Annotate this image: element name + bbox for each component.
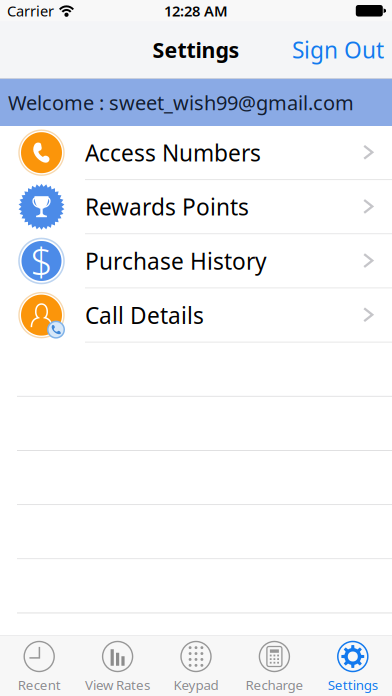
staticText: Welcome : sweet_wish99@gmail.com bbox=[8, 89, 354, 116]
button[interactable]: Recharge bbox=[235, 635, 314, 696]
button[interactable]: Access Numbers bbox=[0, 126, 392, 180]
button[interactable]: Rewards Points bbox=[0, 180, 392, 234]
button[interactable]: $ bbox=[0, 234, 392, 288]
staticText: Recharge bbox=[245, 676, 303, 694]
staticText: View Rates bbox=[85, 676, 150, 694]
staticText: $ bbox=[30, 235, 52, 287]
button[interactable]: View Rates bbox=[78, 635, 157, 696]
staticText: Call Details bbox=[85, 300, 204, 330]
staticText: 12:28 AM bbox=[164, 1, 228, 20]
button[interactable]: Sign Out bbox=[284, 21, 392, 78]
staticText: Recent bbox=[18, 676, 61, 694]
staticText: Sign Out bbox=[292, 35, 384, 65]
staticText: Carrier bbox=[7, 1, 54, 20]
staticText: Rewards Points bbox=[85, 192, 249, 222]
button[interactable]: Call Details bbox=[0, 288, 392, 343]
staticText: Purchase History bbox=[85, 246, 267, 276]
staticText: Keypad bbox=[173, 676, 218, 694]
button[interactable]: Recent bbox=[0, 635, 78, 696]
button[interactable]: Settings bbox=[314, 635, 392, 696]
staticText: Settings bbox=[328, 676, 378, 694]
staticText: Settings bbox=[152, 36, 239, 64]
button[interactable]: Keypad bbox=[157, 635, 235, 696]
staticText: Access Numbers bbox=[85, 138, 261, 168]
